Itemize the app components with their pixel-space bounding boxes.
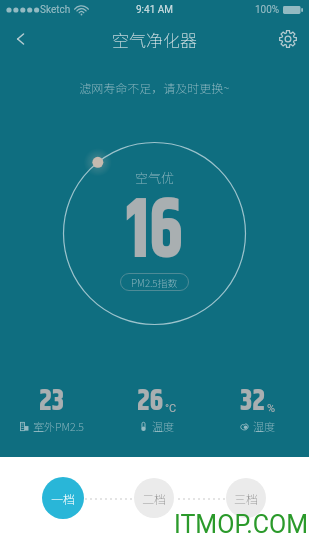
staticText: °C (165, 402, 177, 415)
staticText: 湿度 (253, 418, 275, 434)
staticText: % (267, 402, 276, 415)
staticText: 16 (126, 168, 183, 298)
staticText: ITMOP.COM (174, 510, 309, 539)
staticText: 26 (137, 380, 164, 424)
staticText: 9:41 AM (136, 4, 174, 16)
button[interactable]: 一档 (42, 477, 84, 519)
staticText: 32 (240, 380, 266, 424)
staticText: 空气净化器 (112, 27, 197, 52)
button[interactable]: 二档 (134, 478, 174, 518)
staticText: 一档 (51, 490, 76, 507)
button[interactable]: 三档 (226, 478, 266, 518)
button[interactable]: Settings (267, 20, 309, 58)
staticText: 室外PM2.5 (33, 418, 85, 434)
staticText: PM2.5指数 (131, 275, 178, 289)
staticText: 三档 (234, 490, 259, 507)
button[interactable]: Back (0, 20, 42, 58)
staticText: 100% (255, 4, 280, 16)
staticText: 二档 (142, 490, 167, 507)
staticText: 空气优 (135, 168, 175, 187)
staticText: 23 (39, 380, 65, 424)
staticText: 温度 (152, 418, 174, 434)
staticText: Sketch (40, 4, 71, 16)
staticText: 滤网寿命不足，请及时更换~ (0, 79, 309, 96)
